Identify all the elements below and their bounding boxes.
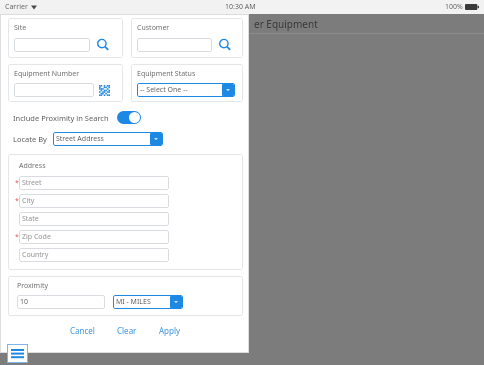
other: Scan barcode	[99, 85, 110, 96]
button[interactable]: Search	[95, 37, 111, 53]
staticText: Carrier	[5, 2, 28, 12]
button[interactable]	[14, 83, 94, 97]
button[interactable]: Cancel	[67, 323, 98, 338]
button[interactable]: Include Proximity in Search	[8, 111, 141, 124]
button[interactable]: -- Select One --	[137, 83, 235, 97]
button[interactable]: MI - MILES	[113, 295, 183, 309]
staticText: MI - MILES	[116, 297, 151, 307]
staticText: -- Select One --	[140, 85, 188, 95]
button[interactable]: Street	[19, 176, 169, 190]
staticText: *	[15, 178, 19, 188]
button[interactable]	[137, 38, 212, 52]
button[interactable]: State	[19, 212, 169, 226]
button[interactable]: Search	[217, 37, 233, 53]
other: Search	[218, 38, 232, 52]
button[interactable]: Zip Code	[19, 230, 169, 244]
staticText: 10	[20, 297, 29, 307]
button[interactable]: Clear	[114, 323, 140, 338]
staticText: 100%	[445, 2, 463, 12]
staticText: Proximity	[17, 281, 49, 291]
staticText: Cancel	[70, 325, 95, 336]
button[interactable]: Menu	[7, 344, 28, 363]
staticText: 10:30 AM	[225, 2, 256, 12]
other: Search	[96, 38, 110, 52]
staticText: Clear	[117, 325, 137, 336]
staticText: Locate By	[13, 134, 47, 144]
button[interactable]: Country	[19, 248, 169, 262]
button[interactable]: Scan barcode	[98, 84, 111, 97]
button[interactable]: City	[19, 194, 169, 208]
button[interactable]: Apply	[156, 323, 184, 338]
staticText: Street	[22, 178, 42, 188]
staticText: State	[22, 214, 39, 224]
staticText: Equipment Status	[137, 69, 196, 79]
staticText: Country	[22, 250, 49, 260]
staticText: er Equipment	[254, 17, 318, 31]
staticText: Equipment Number	[14, 69, 80, 79]
button[interactable]: Street Address	[53, 132, 163, 146]
button[interactable]	[14, 38, 90, 52]
staticText: City	[22, 196, 35, 206]
button[interactable]: 10	[17, 295, 105, 309]
staticText: Include Proximity in Search	[13, 113, 109, 123]
staticText: *	[15, 232, 19, 242]
staticText: Customer	[137, 23, 170, 33]
staticText: Zip Code	[22, 232, 51, 242]
staticText: *	[15, 196, 19, 206]
staticText: Street Address	[56, 134, 104, 144]
staticText: Address	[19, 161, 46, 171]
staticText: Site	[14, 23, 27, 33]
staticText: Apply	[159, 325, 181, 336]
